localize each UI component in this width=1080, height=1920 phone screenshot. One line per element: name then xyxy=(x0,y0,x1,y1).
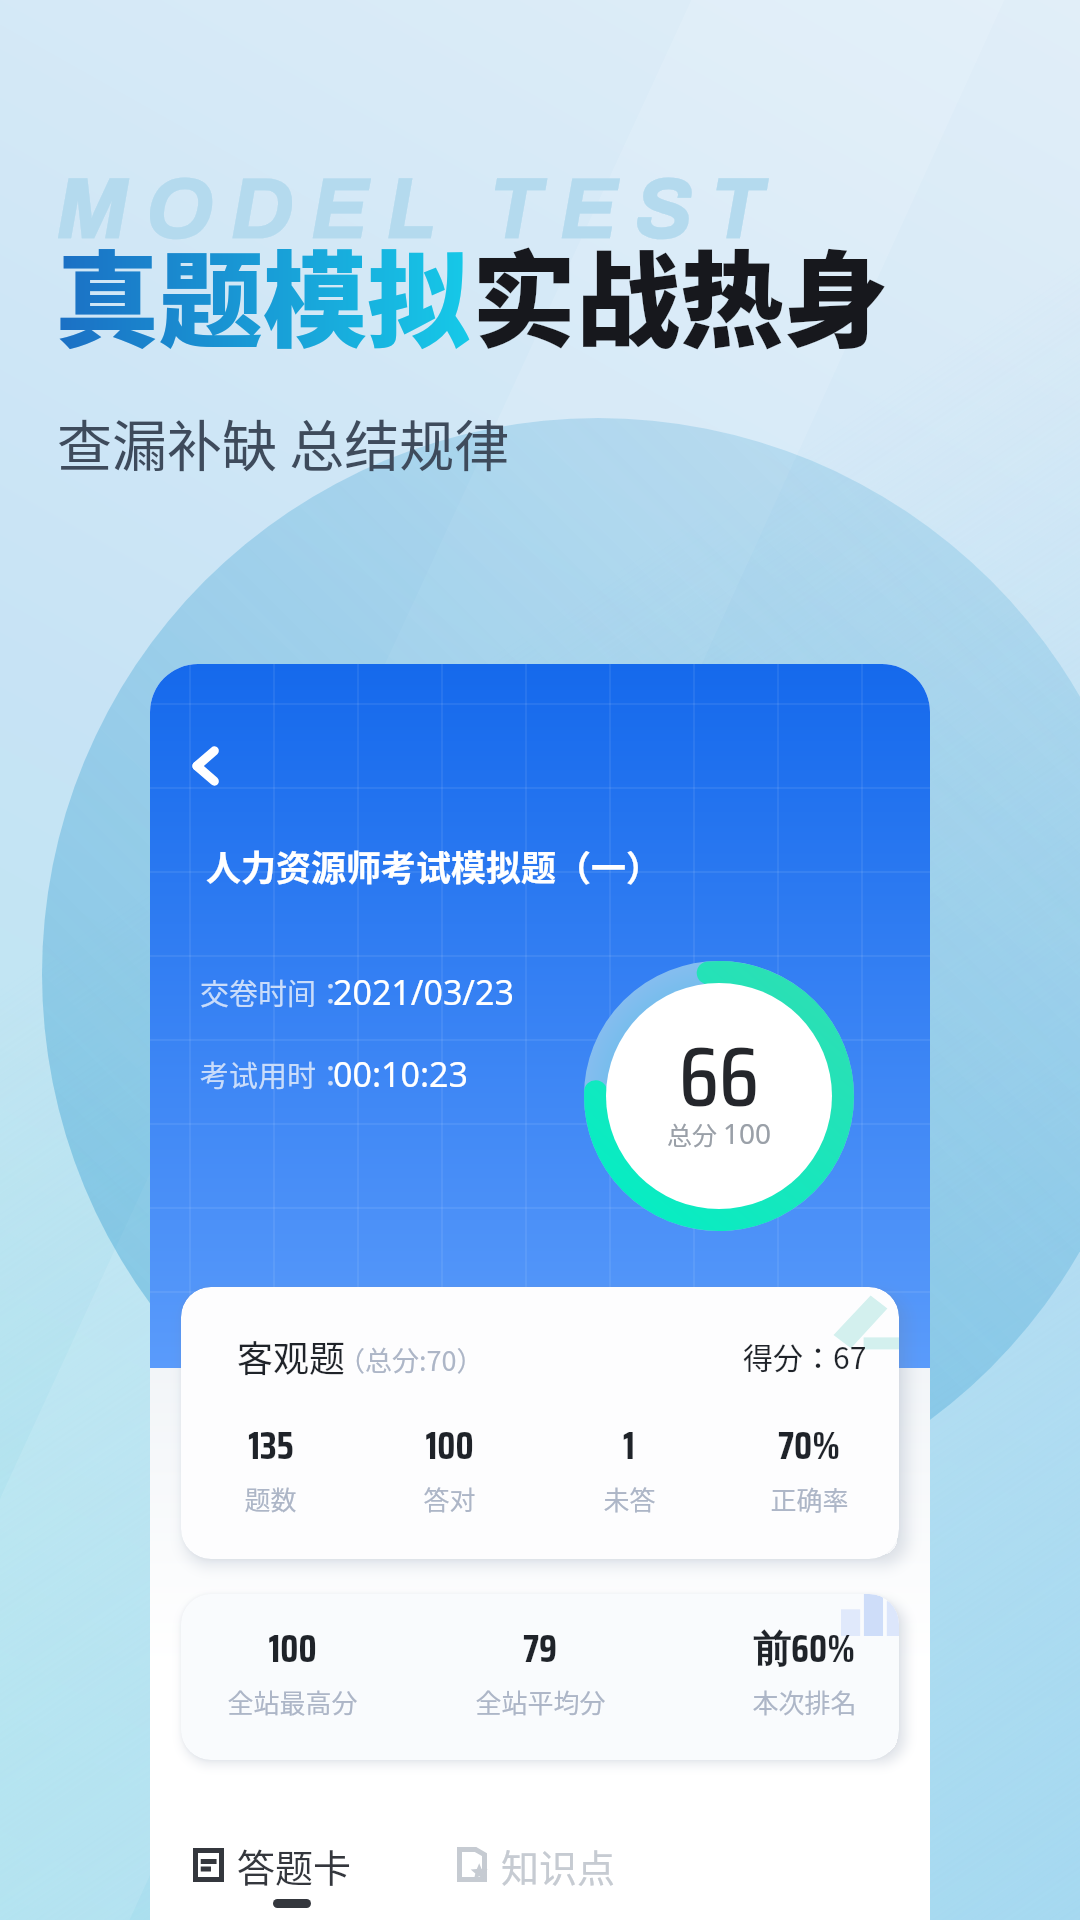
staticText: 100 xyxy=(425,1416,474,1476)
staticText: （总分:70） xyxy=(338,1340,484,1379)
staticText: 100 xyxy=(268,1619,317,1679)
staticText: 答对 xyxy=(423,1480,476,1518)
button[interactable]: 100 xyxy=(181,1594,899,1760)
staticText: 79 xyxy=(523,1619,557,1679)
staticText: 00:10:23 xyxy=(333,1051,468,1097)
staticText: 总分 xyxy=(667,1116,723,1152)
staticText: 人力资源师考试模拟题（一） xyxy=(206,840,662,891)
staticText: 未答 xyxy=(603,1480,656,1518)
staticText: 答题卡 xyxy=(237,1838,352,1893)
staticText: 得分：67 xyxy=(743,1334,867,1377)
staticText: 全站平均分 xyxy=(475,1683,606,1721)
staticText: 2021/03/23 xyxy=(333,969,514,1015)
button[interactable]: 知识点 xyxy=(442,1830,632,1920)
button[interactable]: 客观题 xyxy=(181,1287,899,1559)
staticText: 66 xyxy=(679,1011,759,1143)
staticText: 题数 xyxy=(244,1480,297,1518)
staticText: 真题模拟 xyxy=(55,218,472,369)
staticText: 135 xyxy=(248,1416,294,1476)
staticText: 知识点 xyxy=(501,1838,616,1893)
staticText: 实战热身 xyxy=(472,218,889,369)
staticText: 1 xyxy=(623,1416,635,1476)
staticText: 考试用时： xyxy=(200,1053,346,1095)
staticText: 本次排名 xyxy=(752,1683,857,1721)
staticText: 100 xyxy=(723,1114,772,1152)
button[interactable]: Back xyxy=(174,734,238,798)
staticText: 客观题 xyxy=(237,1330,346,1382)
staticText: 正确率 xyxy=(770,1480,849,1518)
staticText: 前60% xyxy=(753,1619,855,1679)
staticText: MODEL TEST xyxy=(57,163,783,254)
staticText: 交卷时间： xyxy=(200,971,346,1013)
staticText: 查漏补缺 总结规律 xyxy=(57,402,510,482)
button[interactable]: 答题卡 xyxy=(178,1830,368,1920)
staticText: 全站最高分 xyxy=(227,1683,358,1721)
staticText: 70% xyxy=(778,1416,840,1476)
